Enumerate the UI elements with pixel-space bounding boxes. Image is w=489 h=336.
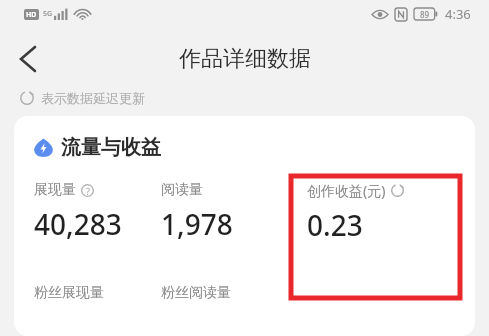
staticText: 表示数据延迟更新: [41, 90, 145, 106]
button[interactable]: 创作收益(元): [307, 181, 475, 244]
button[interactable]: 展现量: [34, 181, 161, 243]
staticText: 4:36: [445, 5, 471, 23]
staticText: 创作收益(元): [307, 181, 386, 200]
staticText: 0.23: [307, 206, 363, 244]
staticText: 流量与收益: [61, 135, 161, 160]
staticText: 89: [420, 9, 430, 20]
staticText: 粉丝阅读量: [161, 284, 231, 302]
button[interactable]: Back: [6, 37, 50, 81]
staticText: 40,283: [34, 205, 122, 243]
staticText: 展现量: [34, 181, 76, 199]
staticText: 阅读量: [161, 181, 203, 199]
staticText: 1,978: [161, 205, 233, 243]
button[interactable]: 阅读量: [161, 181, 307, 243]
staticText: 作品详细数据: [179, 45, 311, 73]
staticText: 5G: [43, 9, 53, 19]
staticText: ?: [86, 185, 90, 197]
staticText: HD: [26, 10, 37, 20]
staticText: 粉丝展现量: [34, 284, 104, 302]
